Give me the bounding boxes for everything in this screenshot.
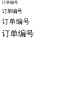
staticText: 订单编号 xyxy=(2,8,22,14)
staticText: 订单编号 xyxy=(2,0,18,5)
staticText: 订单编号 xyxy=(2,17,30,26)
staticText: 订单编号 xyxy=(2,29,34,38)
